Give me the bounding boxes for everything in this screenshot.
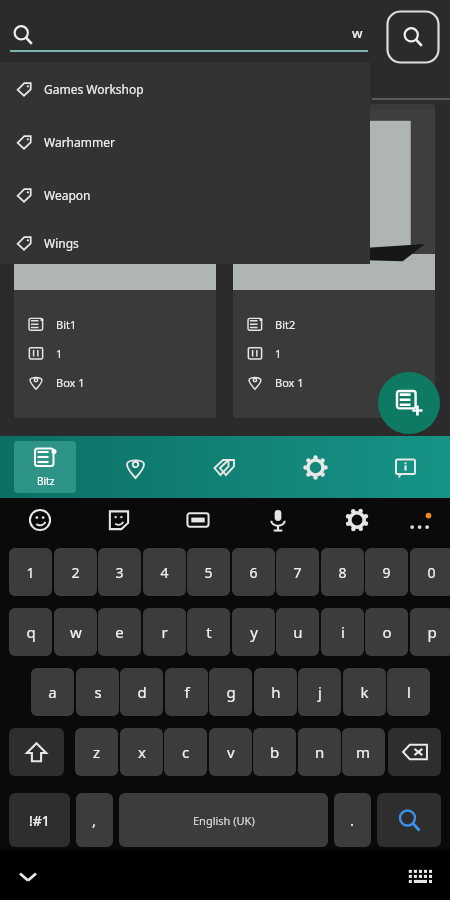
staticText: 1 — [26, 563, 35, 582]
button[interactable]: Switch keyboard — [406, 862, 434, 890]
button[interactable]: 1 — [9, 548, 52, 596]
button[interactable]: n — [298, 728, 341, 776]
button[interactable]: i — [321, 608, 364, 656]
button[interactable]: p — [410, 608, 450, 656]
staticText: Bitz — [37, 474, 55, 488]
button[interactable]: . — [334, 793, 371, 847]
button[interactable]: e — [98, 608, 141, 656]
button[interactable]: Search — [377, 793, 441, 847]
button[interactable]: Bitz — [0, 436, 90, 498]
button[interactable]: Backspace — [388, 728, 441, 776]
button[interactable]: y — [232, 608, 275, 656]
staticText: k — [360, 682, 369, 702]
staticText: t — [206, 622, 212, 642]
staticText: 1 — [275, 346, 282, 361]
staticText: r — [161, 622, 168, 642]
button[interactable]: Warhammer — [0, 115, 370, 168]
button[interactable]: v — [209, 728, 252, 776]
staticText: u — [293, 622, 303, 642]
button[interactable]: Weapon — [0, 168, 370, 221]
button[interactable]: Add bit — [378, 372, 440, 434]
button[interactable]: Bit2 — [233, 104, 435, 418]
button[interactable]: English (UK) — [119, 793, 328, 847]
button[interactable]: z — [75, 728, 118, 776]
staticText: y — [250, 622, 258, 642]
staticText: c — [182, 742, 190, 762]
button[interactable]: 7 — [276, 548, 319, 596]
button[interactable]: b — [253, 728, 296, 776]
staticText: w — [70, 622, 82, 642]
button[interactable]: d — [120, 668, 163, 716]
button[interactable]: More — [404, 506, 438, 540]
button[interactable]: u — [276, 608, 319, 656]
button[interactable]: Search — [386, 10, 440, 64]
button[interactable]: o — [365, 608, 408, 656]
staticText: s — [94, 682, 102, 702]
staticText: v — [227, 742, 235, 762]
button[interactable]: k — [343, 668, 386, 716]
button[interactable]: 8 — [321, 548, 364, 596]
button[interactable]: 0 — [410, 548, 450, 596]
button[interactable]: Nav item — [90, 436, 180, 498]
button[interactable]: m — [342, 728, 385, 776]
button[interactable]: j — [298, 668, 341, 716]
button[interactable]: Keyboard tool — [258, 500, 298, 540]
button[interactable]: w — [54, 608, 97, 656]
staticText: p — [427, 622, 437, 642]
staticText: h — [271, 682, 281, 702]
staticText: e — [115, 622, 124, 642]
button[interactable]: Nav item — [270, 436, 360, 498]
staticText: Bit2 — [275, 317, 296, 332]
staticText: d — [137, 682, 147, 702]
staticText: 7 — [293, 563, 302, 582]
button[interactable]: , — [76, 793, 113, 847]
staticText: 9 — [382, 563, 391, 582]
button[interactable]: h — [254, 668, 297, 716]
staticText: 0 — [427, 563, 436, 582]
staticText: 4 — [160, 563, 169, 582]
button[interactable]: t — [187, 608, 230, 656]
button[interactable]: 4 — [143, 548, 186, 596]
button[interactable]: Keyboard tool — [178, 500, 218, 540]
button[interactable]: 6 — [232, 548, 275, 596]
staticText: j — [318, 682, 322, 702]
button[interactable]: s — [76, 668, 119, 716]
button[interactable]: l — [387, 668, 430, 716]
button[interactable]: Games Workshop — [0, 62, 370, 115]
button[interactable]: Nav item — [180, 436, 270, 498]
button[interactable]: q — [9, 608, 52, 656]
button[interactable]: Keyboard tool — [20, 500, 60, 540]
button[interactable]: x — [120, 728, 163, 776]
button[interactable]: 3 — [98, 548, 141, 596]
staticText: Bit1 — [56, 317, 77, 332]
staticText: Box 1 — [56, 375, 85, 390]
button[interactable]: Keyboard tool — [99, 500, 139, 540]
button[interactable]: 5 — [187, 548, 230, 596]
staticText: 6 — [249, 563, 258, 582]
button[interactable]: Hide keyboard — [12, 860, 44, 892]
staticText: 5 — [204, 563, 213, 582]
button[interactable]: a — [31, 668, 74, 716]
staticText: , — [92, 810, 97, 830]
staticText: . — [350, 810, 355, 830]
button[interactable]: 9 — [365, 548, 408, 596]
staticText: n — [315, 742, 325, 762]
button[interactable]: r — [143, 608, 186, 656]
button[interactable]: Keyboard tool — [337, 500, 377, 540]
other: Search icon — [12, 24, 34, 46]
button[interactable]: Shift — [9, 728, 64, 776]
button[interactable]: c — [164, 728, 207, 776]
staticText: x — [138, 742, 146, 762]
button[interactable]: Bit1 — [14, 104, 216, 418]
staticText: 1 — [56, 346, 63, 361]
button[interactable]: f — [165, 668, 208, 716]
button[interactable]: Wings — [0, 221, 370, 264]
staticText: b — [270, 742, 280, 762]
button[interactable]: g — [209, 668, 252, 716]
staticText: Wings — [44, 235, 79, 251]
staticText: o — [382, 622, 392, 642]
button[interactable]: Nav item — [360, 436, 450, 498]
staticText: 3 — [115, 563, 124, 582]
button[interactable]: 2 — [54, 548, 97, 596]
button[interactable]: !#1 — [9, 793, 70, 847]
